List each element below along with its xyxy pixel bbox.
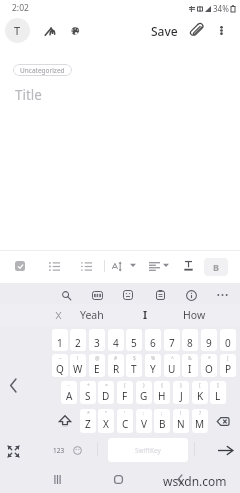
staticText: C [122, 417, 129, 431]
button[interactable]: Enter [214, 438, 236, 462]
button[interactable]: { [154, 381, 170, 404]
staticText: { [161, 382, 163, 389]
button[interactable]: @ [89, 354, 105, 377]
button[interactable]: Bulleted list [44, 256, 64, 276]
button[interactable]: Alignment [144, 256, 164, 276]
button[interactable]: ^ [164, 354, 180, 377]
button[interactable]: 5 [126, 329, 142, 351]
button[interactable]: GIF [88, 286, 106, 304]
button[interactable]: * [201, 354, 217, 377]
button[interactable]: ) [136, 381, 152, 404]
button[interactable]: More options [209, 18, 234, 43]
staticText: Save [151, 23, 178, 39]
button[interactable]: How [169, 304, 219, 326]
staticText: U [168, 362, 176, 376]
button[interactable]: [ [192, 381, 208, 404]
button[interactable]: Clipboard [151, 286, 169, 304]
button[interactable]: Back [167, 466, 193, 492]
button[interactable]: More [213, 286, 231, 304]
staticText: = [105, 382, 108, 389]
button[interactable]: ] [210, 381, 226, 404]
button[interactable]: Handwriting [38, 18, 63, 43]
button[interactable]: Resize keyboard [1, 445, 25, 457]
button[interactable]: T [5, 18, 30, 43]
button[interactable]: 3 [89, 329, 105, 351]
staticText: 6 [150, 336, 156, 350]
staticText: 5 [131, 336, 137, 350]
staticText: M [195, 417, 205, 431]
button[interactable]: Save [147, 18, 182, 43]
button[interactable]: * [80, 409, 96, 433]
button[interactable]: 9 [201, 329, 217, 351]
staticText: ( [124, 382, 126, 389]
button[interactable]: Text colour [178, 255, 198, 275]
staticText: ) [143, 382, 145, 389]
staticText: + [87, 382, 90, 389]
staticText: " [105, 410, 108, 417]
button[interactable]: Checklist [10, 256, 30, 276]
staticText: O [205, 362, 213, 376]
button[interactable]: 1 [52, 329, 68, 351]
button[interactable]: Home [105, 466, 131, 492]
button[interactable]: ( [220, 354, 236, 377]
button[interactable]: % [145, 354, 161, 377]
button[interactable]: : [136, 409, 152, 433]
staticText: I [143, 308, 148, 322]
button[interactable]: Shift [52, 409, 78, 433]
button[interactable]: ! [173, 409, 189, 433]
staticText: : [143, 410, 145, 417]
button[interactable]: ( [117, 381, 133, 404]
button[interactable]: Keyboard settings [182, 286, 200, 304]
button[interactable]: Attach [184, 18, 209, 43]
button[interactable]: ~ [52, 354, 68, 377]
staticText: T [14, 23, 21, 38]
button[interactable]: " [98, 409, 114, 433]
button[interactable]: 6 [145, 329, 161, 351]
button[interactable]: Palette [62, 18, 87, 43]
button[interactable]: ; [154, 409, 170, 433]
staticText: R [113, 362, 120, 376]
button[interactable]: Stickers [119, 286, 137, 304]
staticText: F [122, 389, 128, 403]
button[interactable]: Dismiss suggestions [49, 304, 67, 326]
button[interactable]: Uncategorized [13, 64, 72, 76]
staticText: A [66, 389, 73, 403]
staticText: * [208, 355, 211, 362]
button[interactable]: 4 [108, 329, 124, 351]
staticText: 0 [225, 336, 231, 350]
button[interactable]: ' [117, 409, 133, 433]
button[interactable]: Emoji [68, 438, 87, 462]
button[interactable]: ? [192, 409, 208, 433]
button[interactable]: - [61, 381, 77, 404]
button[interactable]: Yeah [67, 304, 117, 326]
staticText: 4 [113, 336, 119, 350]
button[interactable]: Recents [44, 466, 70, 492]
button[interactable]: + [80, 381, 96, 404]
button[interactable]: Move keyboard left [1, 372, 25, 398]
button[interactable]: Font size [108, 256, 128, 276]
staticText: 123 [53, 446, 65, 455]
button[interactable]: Space [108, 438, 188, 462]
button[interactable]: Backspace [210, 409, 236, 433]
button[interactable]: Numbered list [76, 256, 96, 276]
button[interactable]: I [120, 304, 170, 326]
button[interactable]: 7 [164, 329, 180, 351]
staticText: Uncategorized [20, 66, 65, 75]
staticText: X [103, 417, 109, 431]
button[interactable]: 8 [182, 329, 198, 351]
button[interactable]: 123 [49, 438, 68, 462]
button[interactable]: Search [57, 286, 75, 304]
button[interactable]: = [98, 381, 114, 404]
button[interactable]: 0 [220, 329, 236, 351]
staticText: $ [133, 355, 136, 362]
button[interactable]: } [173, 381, 189, 404]
staticText: @ [95, 355, 100, 362]
button[interactable]: $ [126, 354, 142, 377]
button[interactable]: ! [70, 354, 86, 377]
button[interactable]: # [108, 354, 124, 377]
staticText: S [85, 389, 91, 403]
button[interactable]: 2 [70, 329, 86, 351]
staticText: ! [180, 410, 182, 417]
button[interactable]: B [204, 258, 228, 276]
button[interactable]: & [182, 354, 198, 377]
